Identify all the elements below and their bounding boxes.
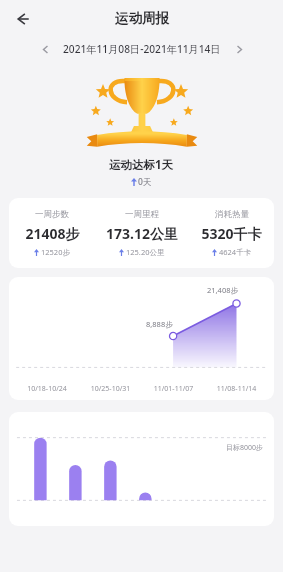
staticText: 11/08-11/14 bbox=[205, 384, 268, 394]
staticText: 173.12公里 bbox=[106, 224, 178, 243]
staticText: 12520步 bbox=[41, 247, 70, 257]
staticText: 0天 bbox=[138, 176, 152, 188]
button[interactable]: Back bbox=[8, 5, 36, 33]
staticText: 21408步 bbox=[25, 224, 80, 243]
staticText: 运动达标1天 bbox=[109, 157, 174, 173]
staticText: 4624千卡 bbox=[219, 247, 252, 257]
staticText: 2021年11月08日-2021年11月14日 bbox=[63, 42, 221, 56]
staticText: 21,408步 bbox=[207, 285, 238, 295]
button[interactable]: Previous week bbox=[36, 40, 54, 58]
staticText: 8,888步 bbox=[146, 319, 173, 329]
button[interactable]: 一周步数 bbox=[9, 198, 274, 268]
staticText: 10/18-10/24 bbox=[15, 384, 79, 394]
staticText: 11/01-11/07 bbox=[142, 384, 205, 394]
staticText: 一周里程 bbox=[125, 209, 159, 220]
staticText: 一周步数 bbox=[35, 209, 69, 220]
staticText: 运动周报 bbox=[115, 10, 169, 27]
staticText: 125.20公里 bbox=[126, 247, 165, 257]
staticText: 消耗热量 bbox=[215, 209, 249, 220]
staticText: 10/25-10/31 bbox=[79, 384, 142, 394]
staticText: 5320千卡 bbox=[201, 224, 262, 243]
staticText: 目标8000步 bbox=[226, 443, 264, 453]
button[interactable]: Next week bbox=[230, 40, 248, 58]
button[interactable]: 目标8000步 bbox=[9, 412, 274, 526]
button[interactable]: 21,408步 bbox=[9, 277, 274, 400]
